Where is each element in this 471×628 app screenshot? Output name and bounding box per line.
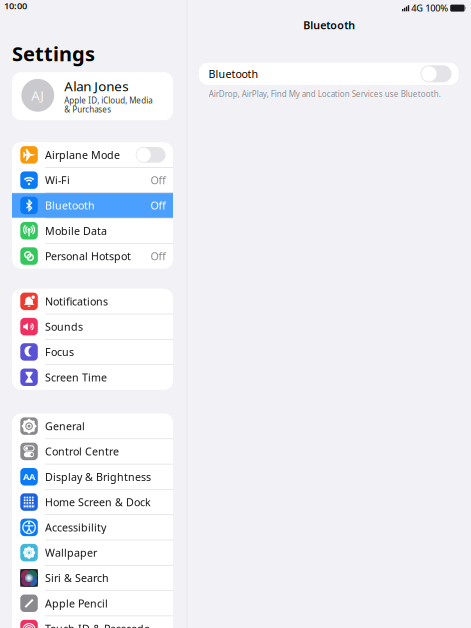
staticText: AJ: [31, 86, 44, 104]
staticText: Wi-Fi: [45, 173, 70, 187]
staticText: Control Centre: [45, 444, 119, 459]
staticText: Off: [150, 249, 165, 263]
button[interactable]: Screen Time: [12, 365, 173, 390]
staticText: Off: [150, 173, 165, 187]
button[interactable]: Focus: [12, 339, 173, 365]
staticText: & Purchases: [64, 104, 111, 115]
button[interactable]: Touch ID & Passcode: [12, 616, 173, 628]
button[interactable]: Off: [12, 167, 173, 193]
staticText: Apple ID, iCloud, Media: [64, 95, 152, 106]
button[interactable]: Accessibility: [12, 515, 173, 540]
staticText: Touch ID & Passcode: [45, 621, 150, 628]
button[interactable]: Notifications: [12, 289, 173, 314]
staticText: Siri & Search: [45, 571, 109, 585]
button[interactable]: Mobile Data: [12, 218, 173, 243]
staticText: Airplane Mode: [45, 148, 120, 162]
staticText: 100%: [425, 2, 448, 14]
staticText: Sounds: [45, 320, 83, 334]
staticText: 4G: [411, 2, 423, 14]
staticText: Display & Brightness: [45, 470, 151, 484]
button[interactable]: Apple Pencil: [12, 591, 173, 616]
button[interactable]: Off: [12, 243, 173, 269]
button[interactable]: Wallpaper: [12, 540, 173, 565]
button[interactable]: Home Screen & Dock: [12, 489, 173, 515]
staticText: Off: [150, 198, 165, 213]
staticText: Apple Pencil: [45, 596, 108, 610]
staticText: Home Screen & Dock: [45, 495, 151, 509]
staticText: Bluetooth: [45, 198, 95, 213]
button[interactable]: Bluetooth: [199, 63, 458, 85]
staticText: AA: [23, 471, 35, 483]
button[interactable]: AA: [12, 464, 173, 489]
button[interactable]: General: [12, 413, 173, 439]
button[interactable]: Off: [12, 142, 173, 167]
staticText: Notifications: [45, 294, 108, 308]
staticText: General: [45, 419, 85, 433]
staticText: Bluetooth: [303, 18, 355, 32]
staticText: AirDrop, AirPlay, Find My and Location S…: [209, 88, 441, 99]
button[interactable]: Sounds: [12, 314, 173, 339]
staticText: Alan Jones: [64, 77, 128, 95]
staticText: Personal Hotspot: [45, 249, 131, 263]
button[interactable]: Control Centre: [12, 439, 173, 464]
button[interactable]: Off: [12, 193, 173, 218]
button[interactable]: AJ: [12, 72, 173, 120]
staticText: Accessibility: [45, 520, 106, 534]
staticText: Settings: [12, 40, 95, 67]
staticText: Screen Time: [45, 370, 107, 384]
staticText: 10:00: [4, 0, 27, 12]
staticText: Bluetooth: [208, 67, 258, 81]
button[interactable]: Siri & Search: [12, 565, 173, 591]
staticText: Focus: [45, 345, 74, 359]
staticText: Wallpaper: [45, 546, 97, 560]
staticText: Mobile Data: [45, 224, 107, 238]
